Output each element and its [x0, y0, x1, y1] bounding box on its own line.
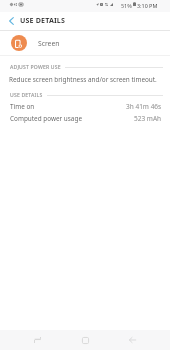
- staticText: USE DETAILS: [20, 15, 66, 25]
- button[interactable]: Home: [73, 330, 97, 350]
- staticText: 3h 41m 46s: [126, 102, 162, 111]
- staticText: Computed power usage: [10, 114, 82, 123]
- button[interactable]: [0, 111, 170, 123]
- button[interactable]: [0, 99, 170, 111]
- staticText: 51%: [121, 2, 132, 9]
- staticText: USE DETAILS: [10, 92, 43, 99]
- staticText: Reduce screen brightness and/or screen t…: [9, 75, 157, 84]
- button[interactable]: [0, 31, 170, 55]
- staticText: Time on: [10, 102, 35, 111]
- button[interactable]: Back: [120, 330, 144, 350]
- staticText: ADJUST POWER USE: [10, 64, 61, 71]
- staticText: Screen: [38, 39, 60, 48]
- button[interactable]: Navigate up: [3, 12, 20, 29]
- button[interactable]: Recent apps: [25, 330, 49, 350]
- staticText: 3:10 PM: [137, 2, 158, 9]
- staticText: 523 mAh: [134, 114, 162, 123]
